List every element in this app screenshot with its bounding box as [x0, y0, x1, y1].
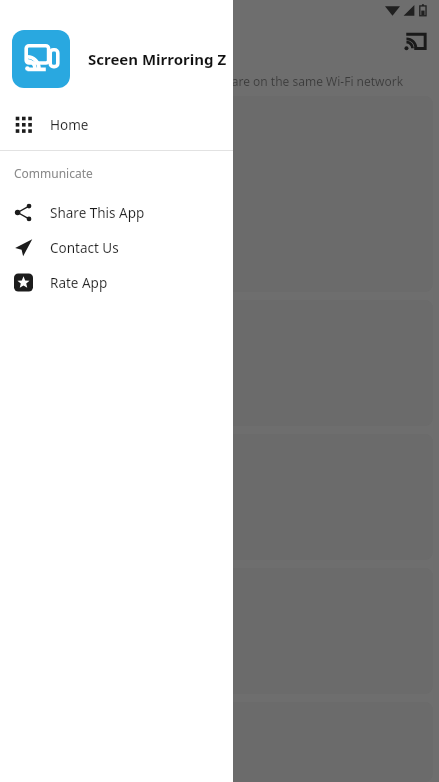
button[interactable]: Cast [397, 22, 433, 58]
button[interactable]: IPTV [6, 434, 433, 560]
staticText: Home [50, 116, 89, 134]
staticText: Rate App [50, 274, 108, 292]
button[interactable]: Contact Us [0, 230, 233, 265]
button[interactable]: Video [6, 300, 433, 426]
button[interactable]: Screen Mirroring [6, 96, 433, 292]
button[interactable]: Rate App [0, 265, 233, 300]
staticText: Make sure both devices are on the same W… [96, 73, 404, 89]
staticText: Screen Mirroring [20, 222, 139, 242]
button[interactable]: Share This App [0, 195, 233, 230]
button[interactable]: Google Photos [6, 568, 433, 694]
staticText: Communicate [14, 165, 93, 181]
staticText: Screen Mirroring Z [88, 49, 227, 69]
staticText: Contact Us [50, 239, 119, 257]
button[interactable]: Web Browser [6, 702, 433, 782]
staticText: Share This App [50, 204, 145, 222]
button[interactable]: Home [0, 107, 233, 142]
